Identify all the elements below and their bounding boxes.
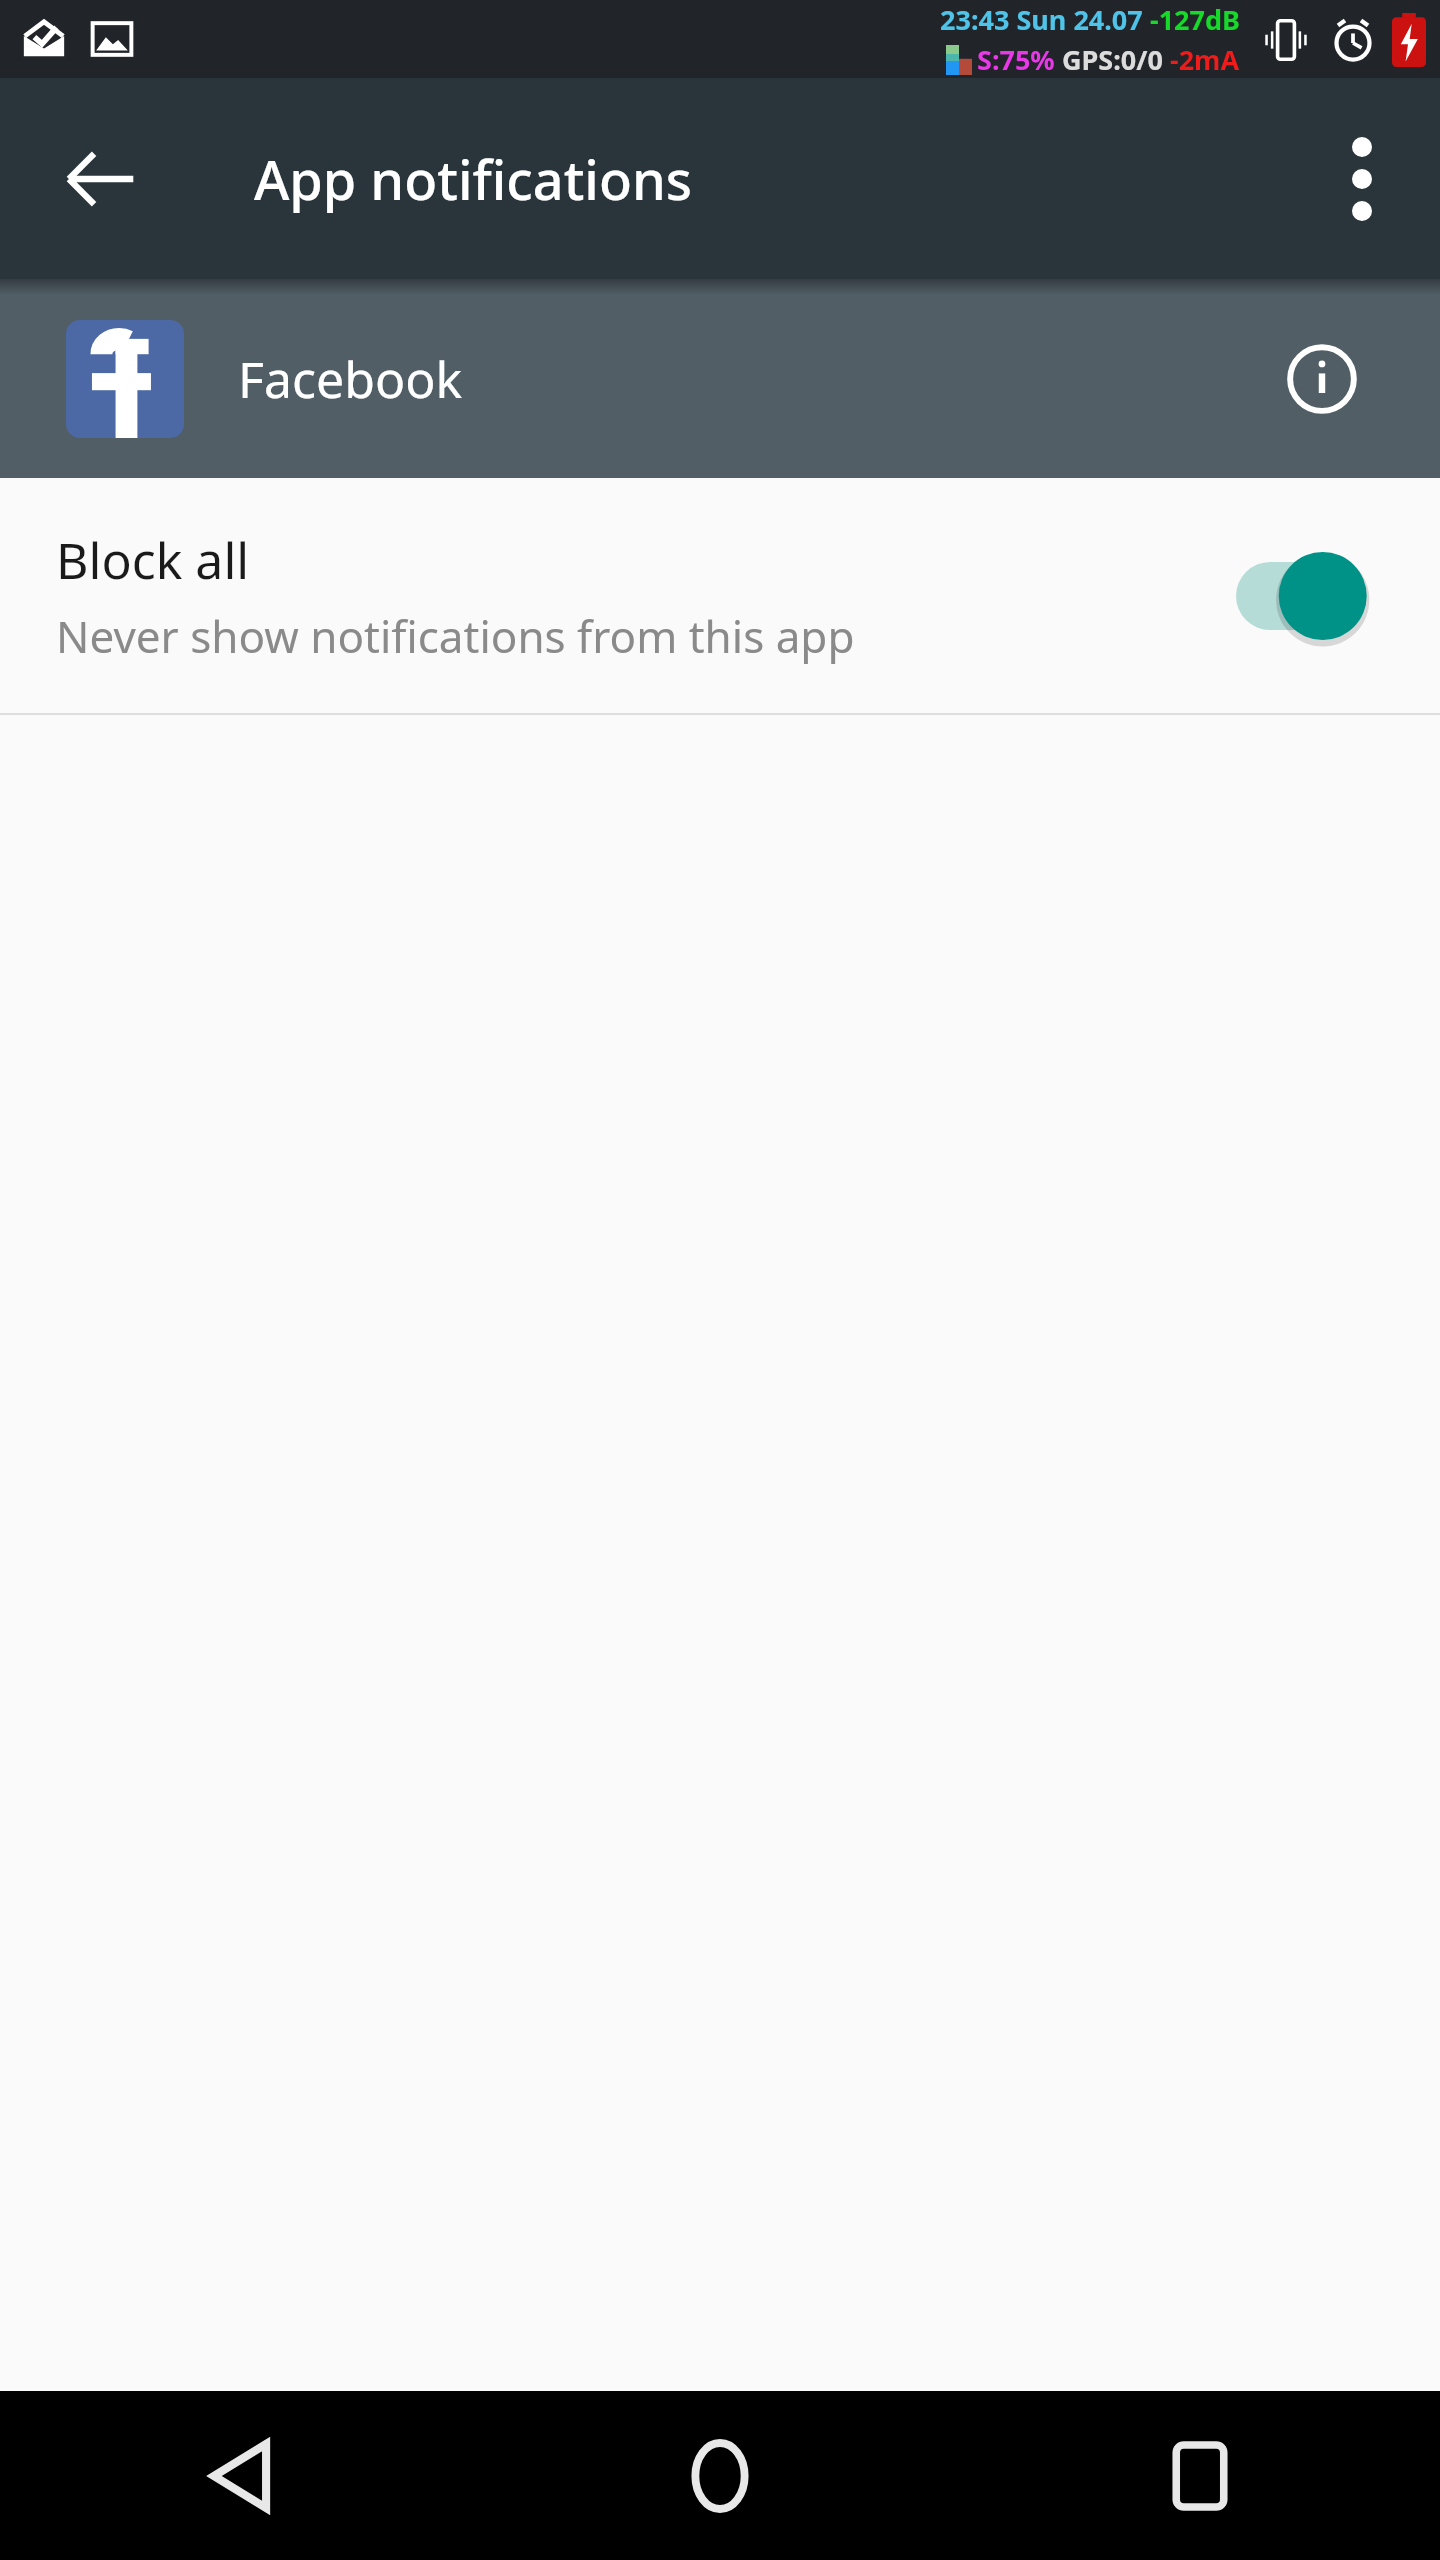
- button[interactable]: App info: [1274, 331, 1370, 427]
- button[interactable]: Overview: [960, 2391, 1440, 2560]
- button[interactable]: Facebook: [0, 279, 1440, 478]
- button[interactable]: Back: [0, 2391, 480, 2560]
- button[interactable]: Navigate up: [28, 107, 172, 251]
- button[interactable]: Block all notifications, on: [1230, 541, 1380, 651]
- staticText: S:75%: [977, 41, 1062, 78]
- staticText: App notifications: [254, 142, 693, 216]
- staticText: Facebook: [238, 345, 1274, 413]
- staticText: Block all: [56, 526, 250, 594]
- button[interactable]: Block all: [0, 478, 1440, 713]
- staticText: -127dB: [1150, 1, 1240, 38]
- staticText: GPS:0/0: [1062, 41, 1170, 78]
- staticText: -2mA: [1170, 41, 1240, 78]
- staticText: Never show notifications from this app: [56, 606, 855, 666]
- staticText: 23:43 Sun 24.07: [940, 1, 1150, 38]
- button[interactable]: Home: [480, 2391, 960, 2560]
- button[interactable]: More options: [1290, 107, 1434, 251]
